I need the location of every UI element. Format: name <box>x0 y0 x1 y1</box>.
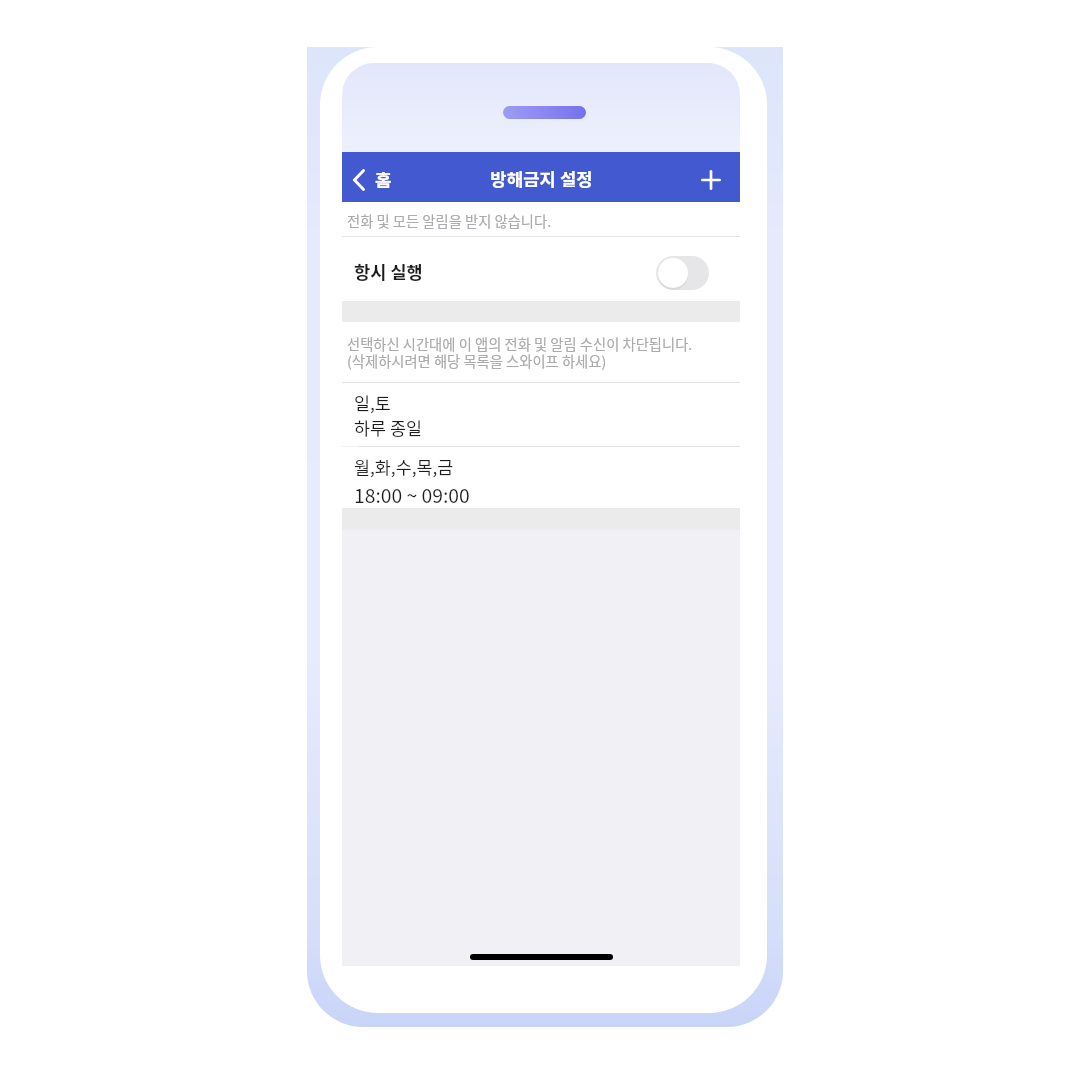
staticText: 월,화,수,목,금 <box>354 454 454 479</box>
staticText: 항시 실행 <box>354 259 423 284</box>
button[interactable]: 일,토 <box>342 383 740 446</box>
staticText: 하루 종일 <box>354 415 422 440</box>
staticText: 홈 <box>375 166 392 192</box>
button[interactable]: 항시 실행 <box>342 237 740 301</box>
button[interactable]: 월,화,수,목,금 <box>342 447 740 508</box>
staticText: 18:00 ~ 09:00 <box>354 481 470 509</box>
staticText: 방해금지 설정 <box>490 165 593 191</box>
button[interactable]: Back to 홈 <box>342 160 404 200</box>
staticText: 선택하신 시간대에 이 앱의 전화 및 알림 수신이 차단됩니다. (삭제하시려… <box>347 333 693 372</box>
button[interactable]: Always on toggle <box>656 256 709 290</box>
staticText: 전화 및 모든 알림을 받지 않습니다. <box>347 210 552 231</box>
staticText: 일,토 <box>354 390 391 415</box>
button[interactable]: Add schedule <box>687 158 740 202</box>
